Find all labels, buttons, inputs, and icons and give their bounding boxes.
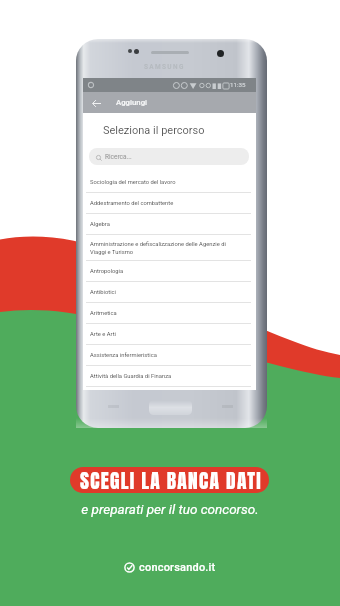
button[interactable]: Assistenza infermieristica bbox=[86, 345, 251, 365]
button[interactable]: Antibiotici bbox=[86, 282, 251, 302]
staticText: SCEGLI LA BANCA DATI bbox=[80, 466, 262, 494]
staticText: 11:35 bbox=[230, 81, 246, 88]
button[interactable] bbox=[70, 467, 269, 493]
staticText: Algebra bbox=[90, 221, 110, 228]
staticText: Addestramento del combattente bbox=[90, 200, 174, 207]
staticText: Antropologia bbox=[90, 268, 124, 275]
button[interactable]: Antropologia bbox=[86, 261, 251, 281]
staticText: Attività della Guardia di Finanza bbox=[90, 373, 172, 380]
staticText: Ricerca... bbox=[105, 153, 132, 161]
staticText: Assistenza infermieristica bbox=[90, 352, 157, 359]
staticText: Arte e Arti bbox=[90, 331, 117, 338]
button[interactable]: Ricerca... bbox=[89, 148, 249, 165]
button[interactable]: Sociologia del mercato del lavoro bbox=[86, 172, 251, 192]
button[interactable]: Arte e Arti bbox=[86, 324, 251, 344]
staticText: Antibiotici bbox=[90, 289, 117, 296]
staticText: e preparati per il tuo concorso. bbox=[81, 501, 259, 517]
staticText: Sociologia del mercato del lavoro bbox=[90, 179, 176, 186]
staticText: Amministrazione e defiscalizzazione dell… bbox=[90, 241, 226, 255]
button[interactable]: Addestramento del combattente bbox=[86, 193, 251, 213]
button[interactable]: Algebra bbox=[86, 214, 251, 234]
button[interactable]: Amministrazione e defiscalizzazione dell… bbox=[86, 235, 251, 260]
staticText: SAMSUNG bbox=[144, 63, 185, 71]
other: concorsando logo bbox=[124, 562, 135, 573]
button[interactable]: Home bbox=[149, 400, 192, 415]
button[interactable]: Aritmetica bbox=[86, 303, 251, 323]
button[interactable]: Attività della Guardia di Finanza bbox=[86, 366, 251, 386]
staticText: Seleziona il percorso bbox=[103, 124, 205, 137]
staticText: Aritmetica bbox=[90, 310, 117, 317]
staticText: concorsando.it bbox=[139, 561, 216, 574]
staticText: Aggiungi bbox=[116, 98, 148, 107]
button[interactable]: Back bbox=[88, 95, 104, 111]
